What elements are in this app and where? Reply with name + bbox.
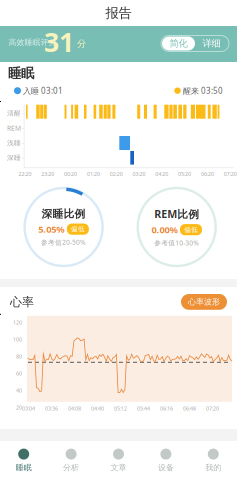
staticText: 5.05% — [38, 223, 64, 235]
staticText: 分 — [77, 38, 86, 49]
staticText: 03:36 — [45, 405, 58, 412]
staticText: 分析 — [63, 463, 79, 472]
staticText: 深睡比例 — [42, 207, 86, 220]
staticText: 心率 — [10, 294, 34, 309]
staticText: 80 — [16, 353, 22, 360]
staticText: 醒来 03:50 — [181, 85, 223, 96]
staticText: 简化 — [169, 38, 187, 49]
staticText: 报告 — [105, 5, 131, 21]
button[interactable]: 简化 — [162, 36, 195, 50]
staticText: 深睡 — [7, 154, 21, 162]
staticText: 31 — [44, 24, 74, 59]
staticText: 01:20 — [87, 170, 100, 178]
staticText: 02:20 — [110, 170, 123, 178]
button[interactable]: 分析 — [47, 441, 95, 480]
staticText: 浅睡 — [7, 139, 21, 147]
staticText: REM — [7, 124, 21, 133]
staticText: 07:20 — [224, 170, 237, 178]
staticText: 00:20 — [64, 170, 77, 178]
staticText: 偏低 — [71, 225, 85, 233]
staticText: 我的 — [205, 463, 221, 472]
staticText: 04:40 — [91, 405, 104, 412]
staticText: 04:08 — [68, 405, 81, 412]
button[interactable]: 详细 — [195, 36, 228, 50]
staticText: 03:04 — [22, 405, 35, 412]
staticText: 06:16 — [160, 405, 173, 412]
staticText: 100 — [13, 336, 22, 343]
button[interactable]: 心率波形 — [181, 294, 227, 310]
staticText: 06:48 — [183, 405, 196, 412]
staticText: 05:12 — [114, 405, 127, 412]
staticText: 偏低 — [184, 226, 198, 234]
staticText: 心率波形 — [188, 297, 220, 307]
staticText: 04:20 — [155, 170, 168, 178]
staticText: 详细 — [202, 38, 220, 49]
button[interactable]: 设备 — [142, 441, 190, 480]
button[interactable]: 文章 — [95, 441, 142, 480]
staticText: 03:20 — [132, 170, 145, 178]
staticText: 23:20 — [41, 170, 54, 178]
staticText: 06:20 — [201, 170, 214, 178]
staticText: 05:20 — [178, 170, 191, 178]
staticText: 0.00% — [151, 223, 177, 236]
staticText: 睡眠 — [8, 65, 34, 81]
staticText: REM比例 — [154, 207, 199, 221]
staticText: 07:20 — [206, 405, 219, 412]
staticText: 参考值10-30% — [154, 238, 199, 247]
staticText: 40 — [16, 387, 22, 394]
staticText: 参考值20-50% — [41, 238, 86, 247]
staticText: 05:44 — [137, 405, 150, 412]
staticText: 文章 — [110, 463, 126, 472]
button[interactable]: 睡眠 — [0, 441, 47, 480]
staticText: 睡眠 — [16, 463, 32, 472]
staticText: 清醒 — [7, 109, 21, 117]
staticText: 120 — [13, 319, 22, 326]
button[interactable]: 我的 — [190, 441, 237, 480]
staticText: 20 — [16, 404, 22, 411]
staticText: 高效睡眠评分 — [8, 37, 56, 47]
staticText: 60 — [16, 370, 22, 377]
staticText: 入睡 03:01 — [21, 85, 63, 96]
staticText: 22:20 — [18, 170, 31, 178]
staticText: 设备 — [158, 463, 174, 472]
